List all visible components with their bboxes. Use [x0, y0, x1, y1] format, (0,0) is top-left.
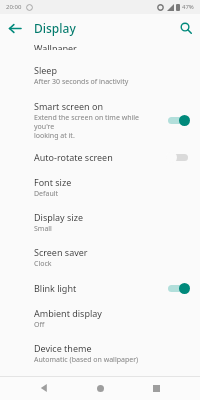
- button[interactable]: Auto-rotate screen: [0, 150, 200, 164]
- staticText: Wallpaper: [34, 42, 77, 50]
- staticText: Smart screen on: [34, 100, 103, 112]
- staticText: Sleep: [34, 64, 57, 76]
- button[interactable]: Sleep: [0, 64, 200, 87]
- staticText: Screen saver: [34, 246, 88, 258]
- button[interactable]: Display size: [0, 211, 200, 234]
- staticText: Extend the screen on time while you're l…: [34, 113, 160, 140]
- button[interactable]: Recents: [144, 376, 168, 400]
- staticText: Display size: [34, 211, 83, 223]
- staticText: Device theme: [34, 342, 92, 354]
- staticText: Off: [34, 320, 45, 330]
- button[interactable]: Device theme: [0, 342, 200, 365]
- staticText: Small: [34, 224, 52, 234]
- staticText: Display: [34, 20, 76, 36]
- staticText: Ambient display: [34, 307, 102, 319]
- button[interactable]: Search: [172, 14, 200, 42]
- staticText: 20:00: [6, 3, 22, 11]
- button[interactable]: Ambient display: [0, 307, 200, 330]
- button[interactable]: Smart screen on: [0, 100, 200, 140]
- staticText: After 30 seconds of inactivity: [34, 77, 129, 87]
- button[interactable]: Off: [166, 150, 190, 164]
- button[interactable]: Back: [32, 376, 56, 400]
- staticText: Default: [34, 189, 59, 199]
- staticText: Automatic (based on wallpaper): [34, 355, 139, 365]
- button[interactable]: Blink light: [0, 281, 200, 295]
- button[interactable]: Back: [0, 14, 28, 42]
- button[interactable]: Font size: [0, 176, 200, 199]
- button[interactable]: On: [166, 113, 190, 127]
- staticText: Clock: [34, 259, 52, 269]
- button[interactable]: Home: [88, 376, 112, 400]
- staticText: Blink light: [34, 282, 77, 294]
- staticText: Auto-rotate screen: [34, 151, 113, 163]
- button[interactable]: Wallpaper: [0, 42, 200, 50]
- staticText: 47%: [182, 3, 194, 11]
- button[interactable]: On: [166, 281, 190, 295]
- staticText: Font size: [34, 176, 72, 188]
- button[interactable]: Screen saver: [0, 246, 200, 269]
